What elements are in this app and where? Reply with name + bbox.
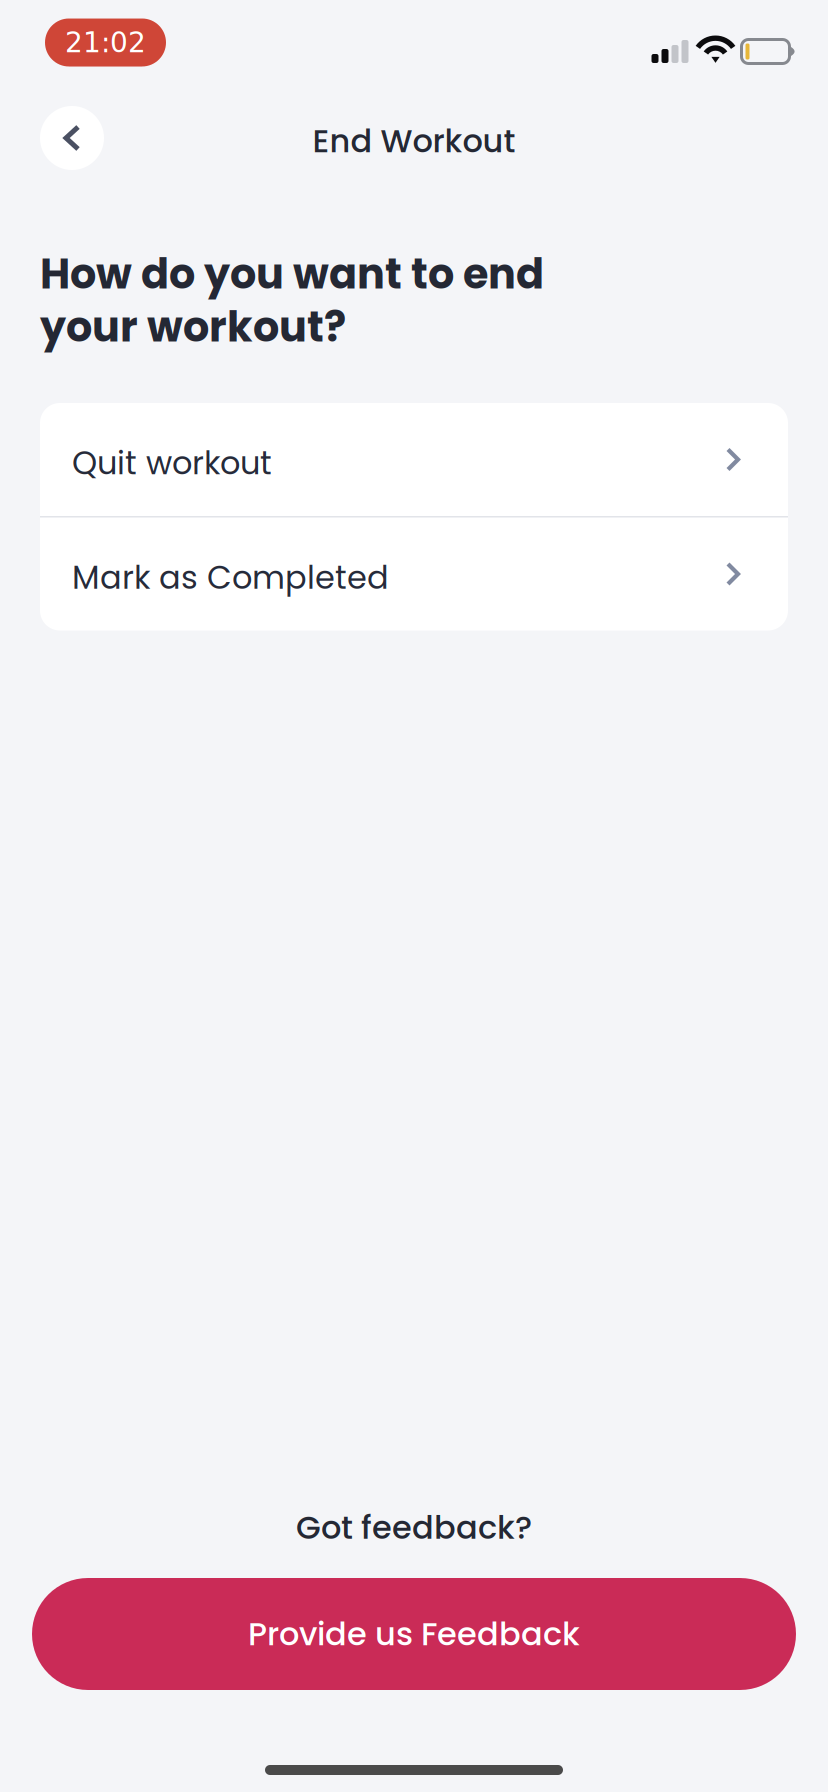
staticText: Got feedback? — [296, 1505, 532, 1550]
button[interactable]: Mark as Completed — [40, 517, 788, 630]
button[interactable]: Provide us Feedback — [32, 1578, 796, 1690]
staticText: How do you want to end — [40, 245, 544, 303]
staticText: End Workout — [312, 119, 515, 163]
button[interactable]: Quit workout — [40, 403, 788, 516]
staticText: Provide us Feedback — [248, 1612, 580, 1656]
staticText: your workout? — [40, 298, 346, 356]
staticText: Quit workout — [72, 441, 272, 485]
button[interactable]: Back — [32, 98, 112, 178]
staticText: Mark as Completed — [72, 555, 389, 600]
staticText: 21:02 — [65, 26, 146, 59]
